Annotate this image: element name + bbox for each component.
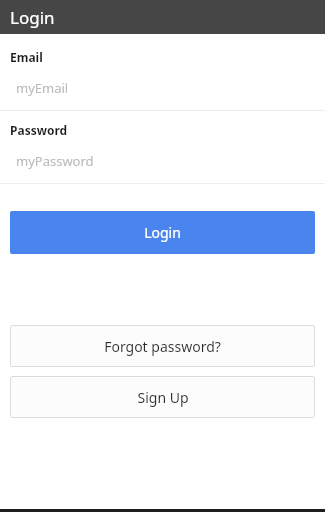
staticText: Login [144,223,181,242]
staticText: Password [10,122,68,138]
staticText: myPassword [16,152,94,170]
staticText: myEmail [16,79,69,97]
button[interactable]: Login [10,211,315,254]
button[interactable]: myPassword [0,150,325,172]
button[interactable]: Forgot password? [10,325,315,367]
button[interactable]: myEmail [0,77,325,99]
staticText: Email [10,49,43,65]
button[interactable]: Sign Up [10,376,315,418]
staticText: Forgot password? [104,337,221,356]
staticText: Login [10,6,55,29]
staticText: Sign Up [137,388,189,407]
